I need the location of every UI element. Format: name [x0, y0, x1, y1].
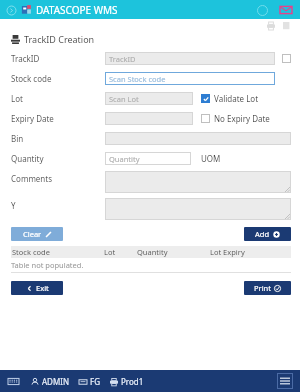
staticText: Lot: [104, 247, 116, 257]
staticText: Validate Lot: [214, 93, 259, 104]
staticText: Clear: [23, 229, 42, 239]
staticText: Exit: [36, 283, 49, 293]
button[interactable]: Print: [244, 281, 291, 295]
staticText: Scan Lot: [109, 94, 139, 104]
button[interactable]: Messages: [278, 2, 294, 18]
staticText: Stock code: [12, 247, 50, 257]
staticText: No Expiry Date: [214, 113, 270, 124]
button[interactable]: Print: [265, 20, 277, 32]
staticText: Y: [11, 200, 16, 211]
staticText: Lot: [11, 93, 23, 104]
staticText: UOM: [201, 153, 221, 164]
button[interactable]: FG: [79, 376, 100, 387]
button[interactable]: Menu: [4, 3, 18, 17]
staticText: Expiry Date: [11, 113, 54, 124]
button[interactable]: Help: [254, 2, 270, 18]
staticText: Comments: [11, 173, 53, 184]
staticText: TrackID: [109, 54, 136, 64]
button[interactable]: Scan Lot: [105, 92, 193, 105]
staticText: Scan Stock code: [109, 74, 166, 84]
staticText: Quantity: [137, 247, 168, 257]
staticText: Bin: [11, 133, 24, 144]
button[interactable]: Exit: [11, 281, 63, 295]
button[interactable]: [105, 198, 291, 220]
button[interactable]: Prod1: [110, 376, 144, 387]
button[interactable]: Quantity: [105, 152, 191, 165]
button[interactable]: [105, 112, 193, 125]
staticText: Prod1: [121, 376, 144, 387]
button[interactable]: Unchecked: [282, 54, 291, 63]
staticText: Print: [254, 283, 271, 293]
staticText: Quantity: [11, 153, 44, 164]
button[interactable]: [105, 171, 291, 193]
button[interactable]: Copy: [281, 20, 293, 32]
button[interactable]: Scan Stock code: [105, 72, 275, 85]
staticText: TrackID Creation: [24, 33, 95, 45]
button[interactable]: ADMIN: [31, 376, 69, 387]
staticText: Quantity: [109, 154, 140, 164]
staticText: Add: [255, 229, 270, 239]
button[interactable]: Add: [244, 227, 291, 241]
staticText: Lot Expiry: [210, 247, 245, 257]
staticText: Stock code: [11, 73, 52, 84]
staticText: FG: [90, 376, 100, 387]
staticText: TrackID: [11, 53, 40, 64]
button[interactable]: Checked: [201, 94, 210, 103]
button[interactable]: Unchecked: [201, 114, 210, 123]
button[interactable]: TrackID: [105, 52, 275, 65]
button[interactable]: [105, 132, 291, 145]
staticText: Table not populated.: [11, 260, 84, 270]
button[interactable]: Keyboard: [6, 374, 20, 388]
staticText: DATASCOPE WMS: [36, 3, 118, 17]
button[interactable]: Menu: [277, 373, 293, 389]
staticText: ADMIN: [42, 376, 69, 387]
button[interactable]: Clear: [11, 227, 63, 241]
